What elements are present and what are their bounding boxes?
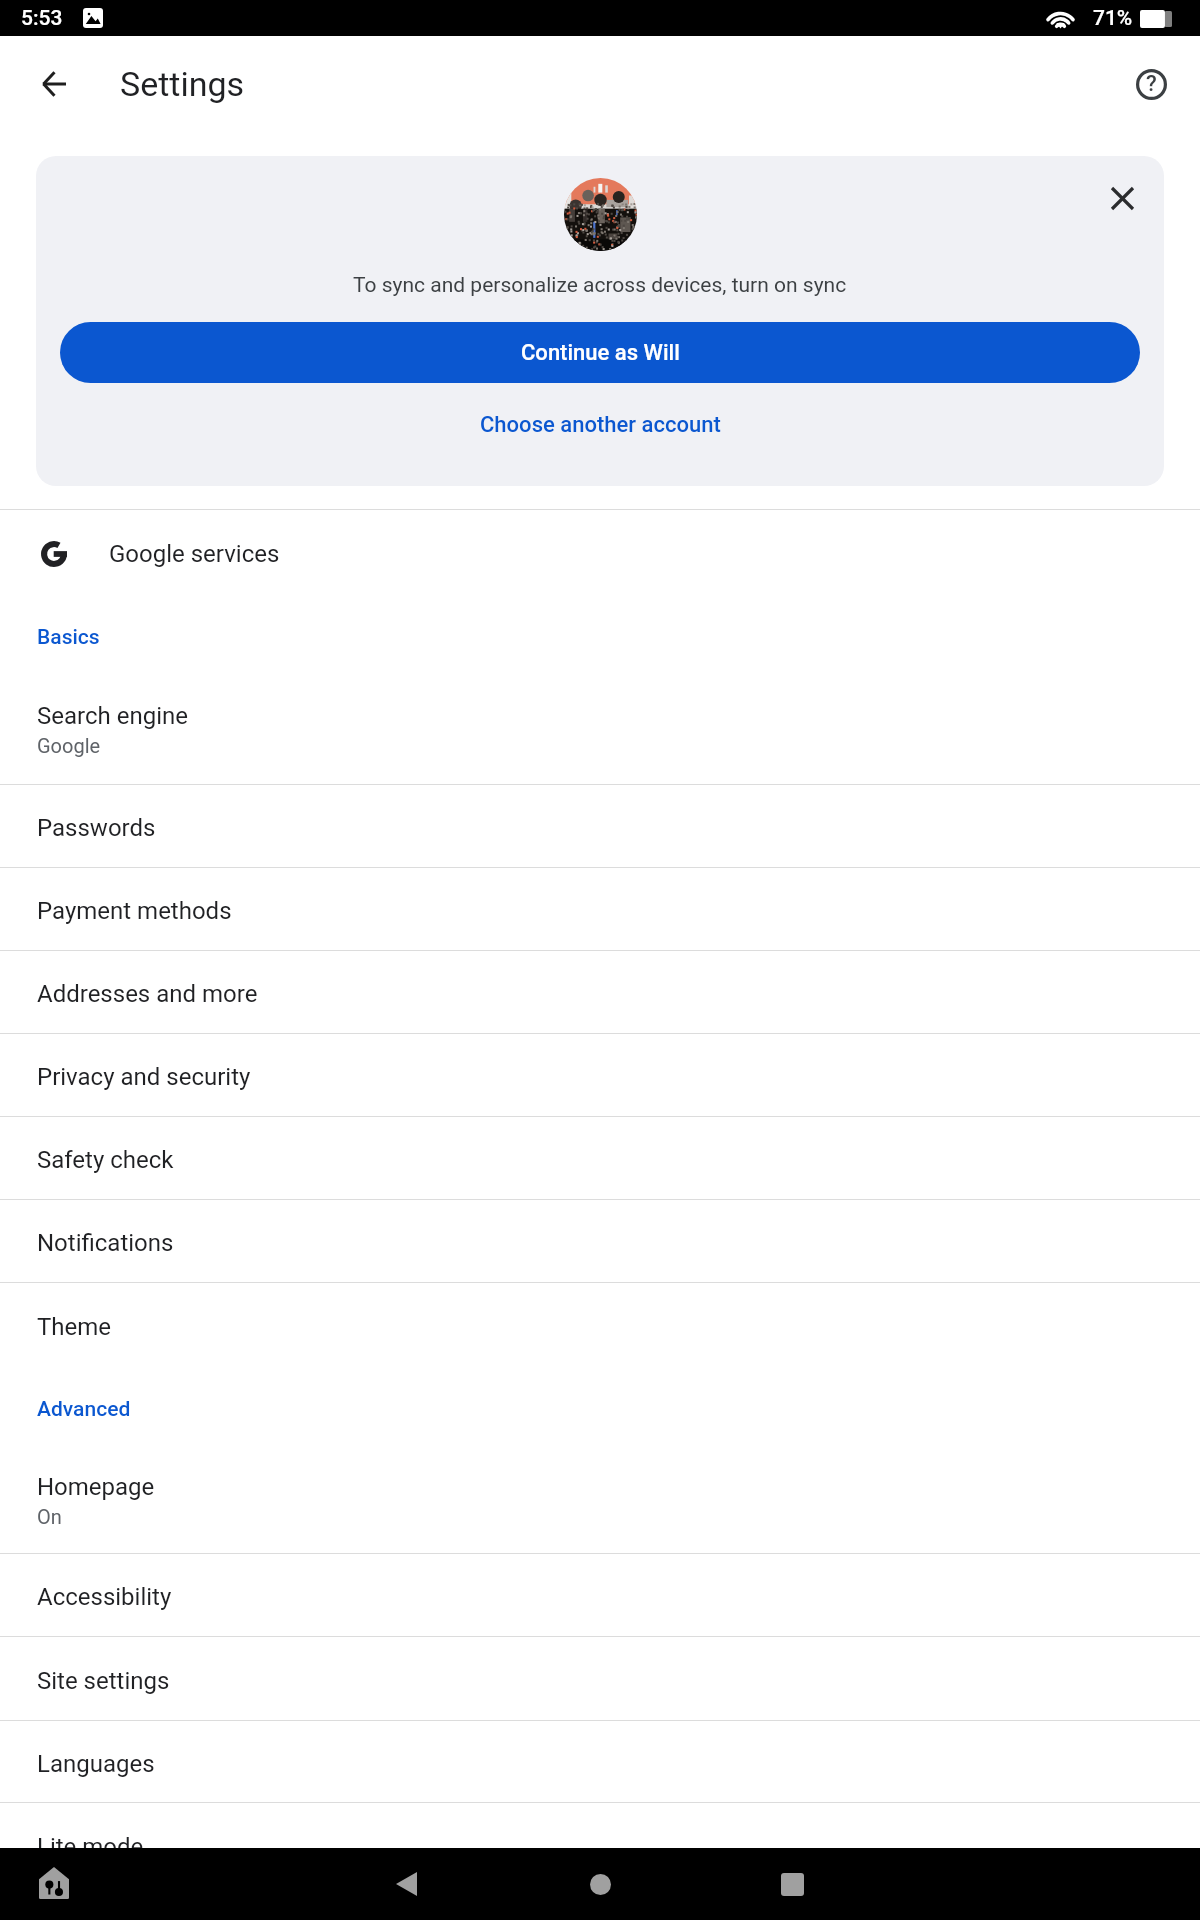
button[interactable]: Help and feedback — [1123, 56, 1179, 112]
button[interactable]: Notifications — [0, 1200, 1200, 1283]
button[interactable]: Languages — [0, 1721, 1200, 1803]
button[interactable]: Homepage — [0, 1449, 1200, 1554]
button[interactable]: Accessibility — [0, 1554, 1200, 1637]
staticText: Languages — [37, 1750, 155, 1778]
staticText: Advanced — [37, 1397, 131, 1422]
button[interactable]: Passwords — [0, 785, 1200, 868]
button[interactable]: Choose another account — [36, 412, 1164, 438]
button[interactable]: Home — [26, 1855, 82, 1911]
button[interactable]: Theme — [0, 1283, 1200, 1366]
button[interactable]: Safety check — [0, 1117, 1200, 1200]
staticText: Payment methods — [37, 897, 232, 925]
button[interactable]: Privacy and security — [0, 1034, 1200, 1117]
button[interactable]: Back — [378, 1856, 434, 1912]
staticText: To sync and personalize across devices, … — [353, 273, 847, 298]
button[interactable]: Search engine — [0, 677, 1200, 785]
button[interactable]: Recent apps — [764, 1856, 820, 1912]
staticText: Google — [37, 734, 101, 757]
staticText: Privacy and security — [37, 1063, 251, 1091]
button[interactable]: Navigate up — [26, 56, 82, 112]
button[interactable]: Google services — [0, 510, 1200, 594]
button[interactable]: Home screen — [572, 1856, 628, 1912]
staticText: Homepage — [37, 1473, 155, 1501]
staticText: Theme — [37, 1313, 112, 1341]
staticText: Site settings — [37, 1667, 170, 1695]
staticText: Basics — [37, 625, 100, 650]
staticText: 71% — [1093, 6, 1133, 31]
staticText: Google services — [109, 540, 280, 568]
staticText: Lite mode — [37, 1833, 144, 1861]
staticText: Passwords — [37, 814, 156, 842]
staticText: Notifications — [37, 1229, 174, 1257]
staticText: 5:53 — [21, 6, 63, 31]
staticText: Choose another account — [480, 412, 721, 438]
staticText: Search engine — [37, 702, 188, 730]
staticText: Safety check — [37, 1146, 174, 1174]
button[interactable]: Dismiss — [1093, 169, 1151, 227]
staticText: Continue as Will — [521, 340, 680, 366]
button[interactable]: Addresses and more — [0, 951, 1200, 1034]
button[interactable]: Continue as Will — [60, 322, 1140, 383]
staticText: ? — [1146, 71, 1157, 97]
button[interactable]: Site settings — [0, 1637, 1200, 1721]
staticText: Accessibility — [37, 1583, 172, 1611]
staticText: Addresses and more — [37, 980, 258, 1008]
staticText: Settings — [120, 64, 245, 104]
staticText: On — [37, 1505, 62, 1528]
button[interactable]: Lite mode — [0, 1803, 1200, 1886]
button[interactable]: Payment methods — [0, 868, 1200, 951]
